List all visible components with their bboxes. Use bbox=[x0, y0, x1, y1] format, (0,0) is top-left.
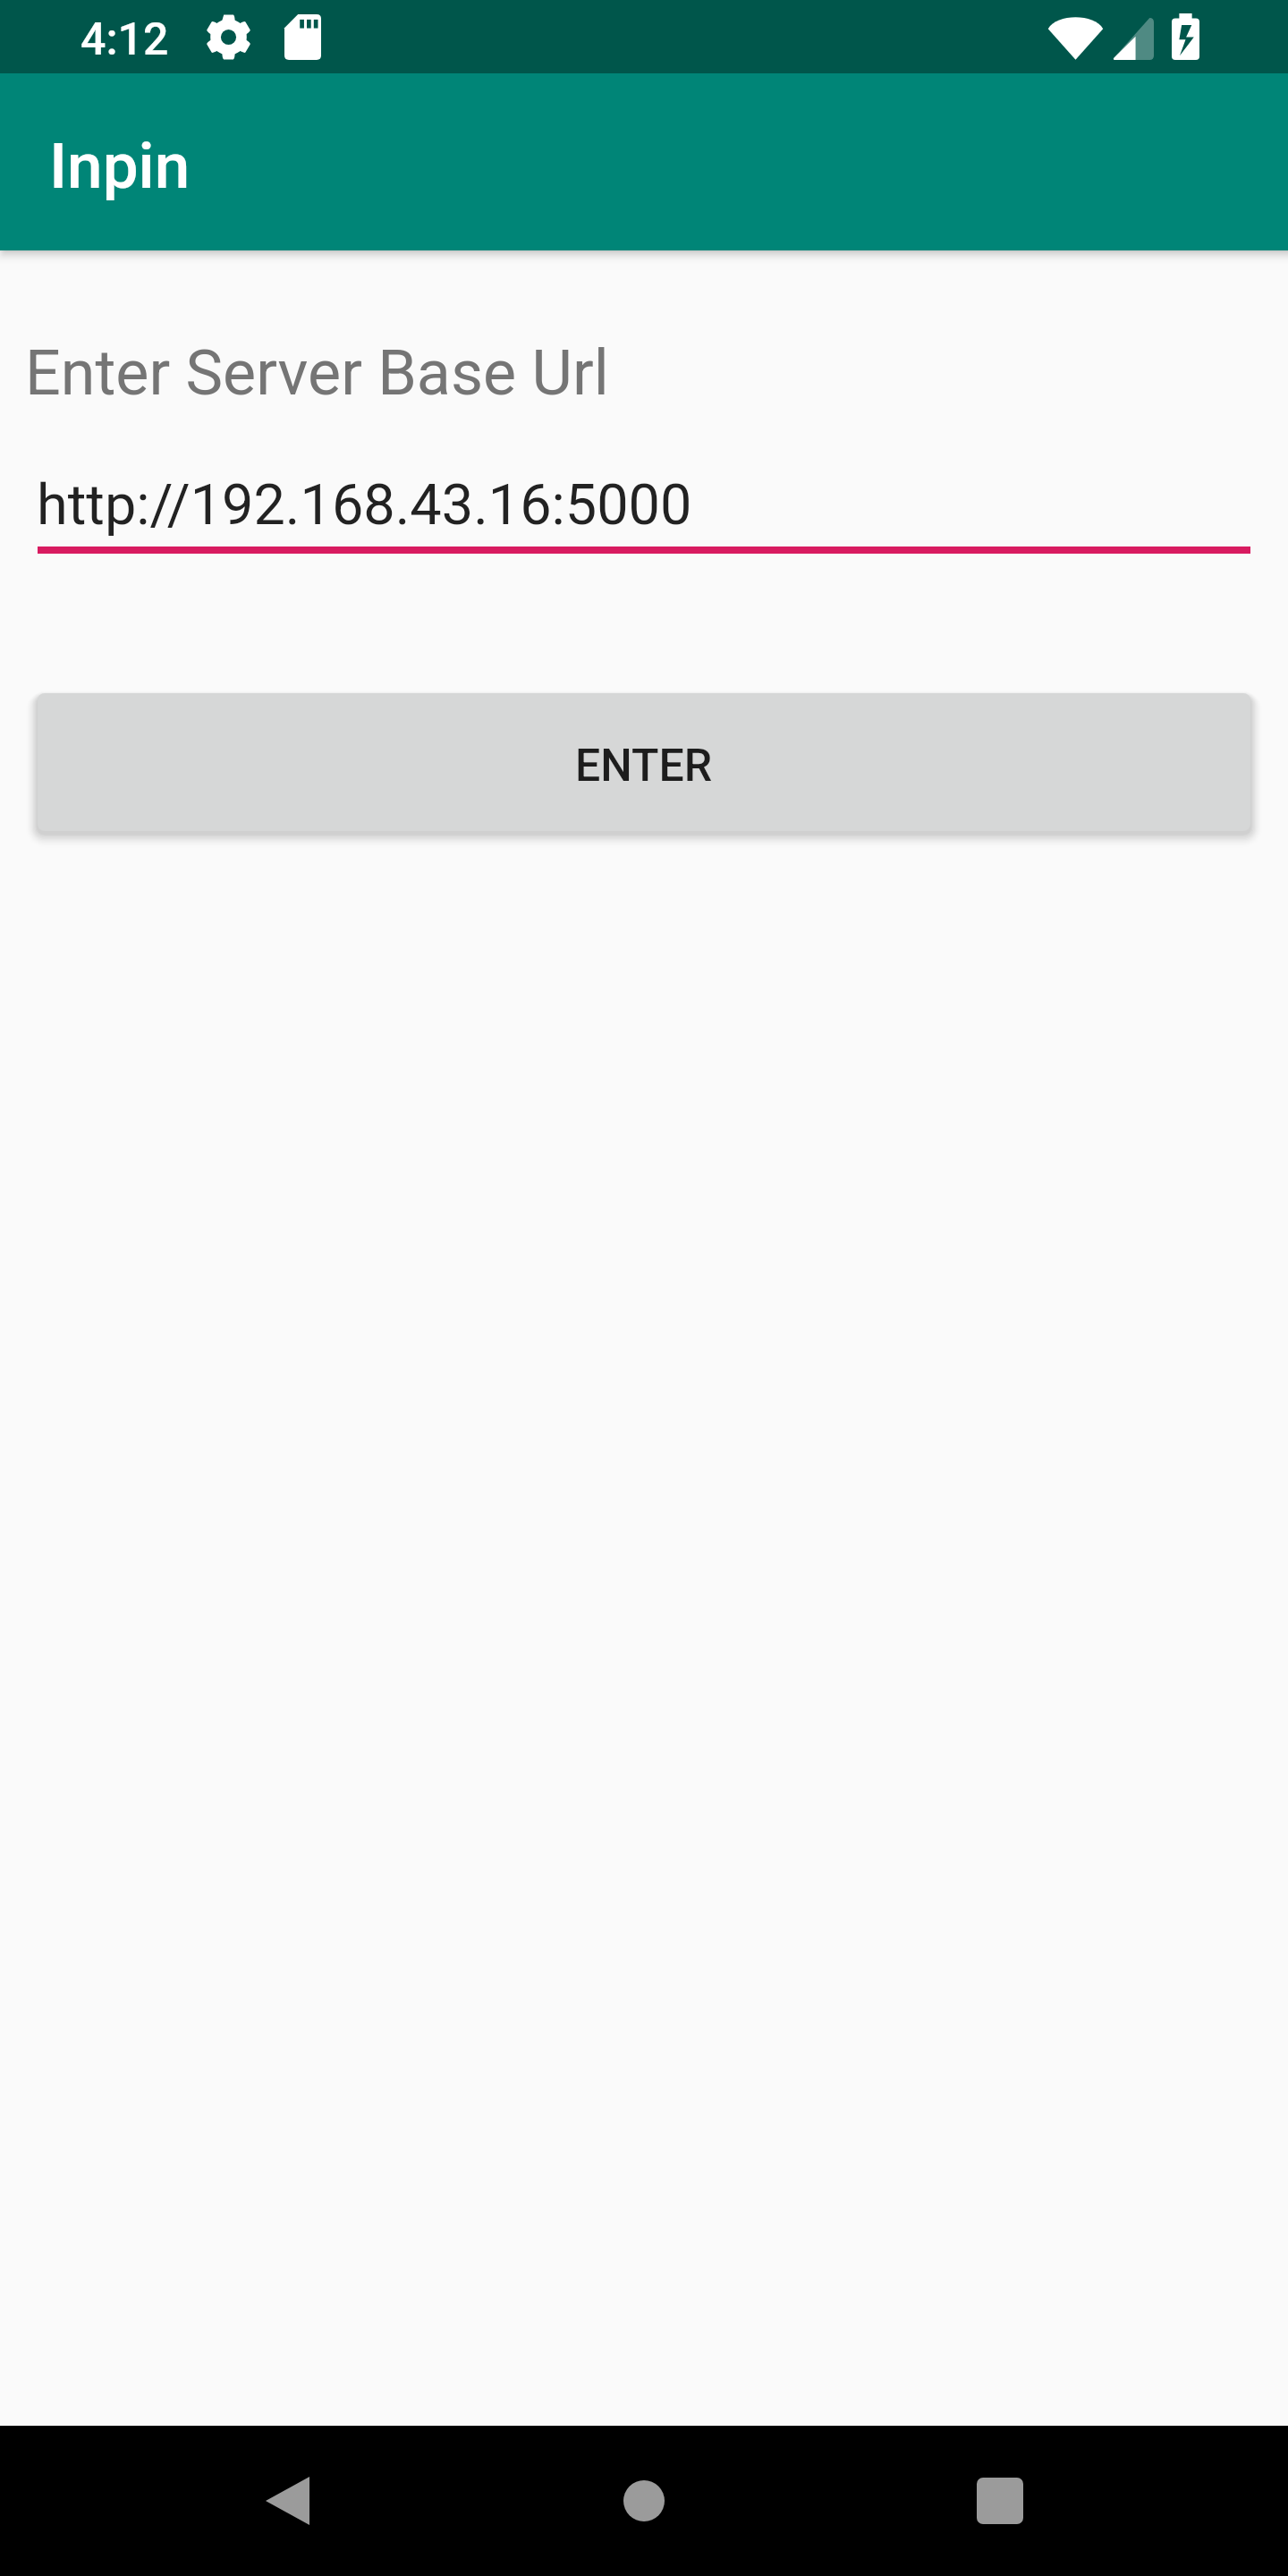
button[interactable]: Recent apps bbox=[893, 2426, 1107, 2576]
button[interactable]: ENTER bbox=[38, 693, 1250, 831]
staticText: Inpin bbox=[49, 129, 191, 203]
staticText: 4:12 bbox=[80, 13, 169, 66]
button[interactable]: Back bbox=[180, 2426, 394, 2576]
staticText: http://192.168.43.16:5000 bbox=[37, 472, 692, 538]
button[interactable]: Home bbox=[537, 2426, 751, 2576]
staticText: ENTER bbox=[575, 740, 713, 792]
staticText: Enter Server Base Url bbox=[25, 336, 609, 410]
